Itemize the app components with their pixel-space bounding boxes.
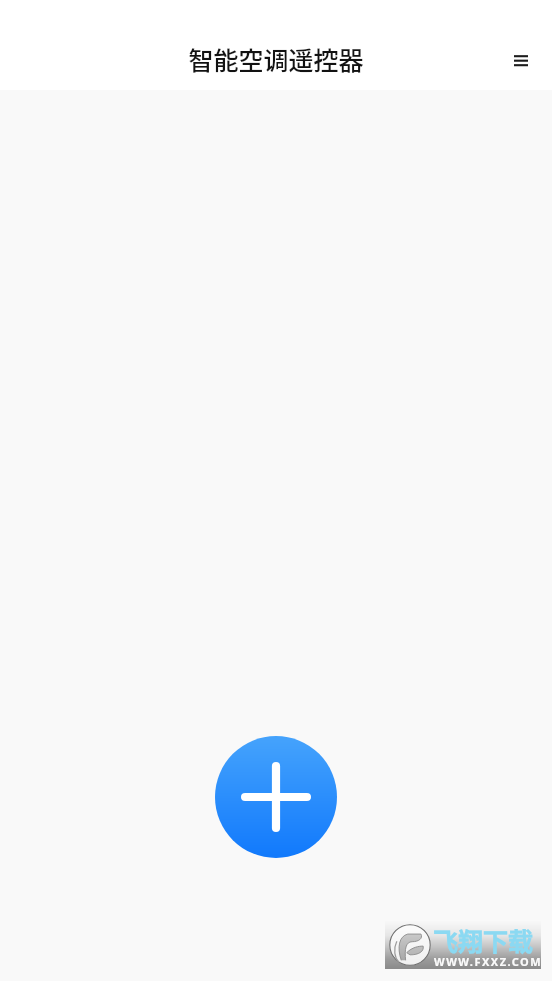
staticText: 飞翔下载 <box>433 922 534 958</box>
button[interactable]: Add <box>215 736 337 858</box>
button[interactable]: Menu <box>497 36 545 84</box>
staticText: WWW.FXXZ.COM <box>434 954 543 969</box>
staticText: 智能空调遥控器 <box>188 41 364 77</box>
